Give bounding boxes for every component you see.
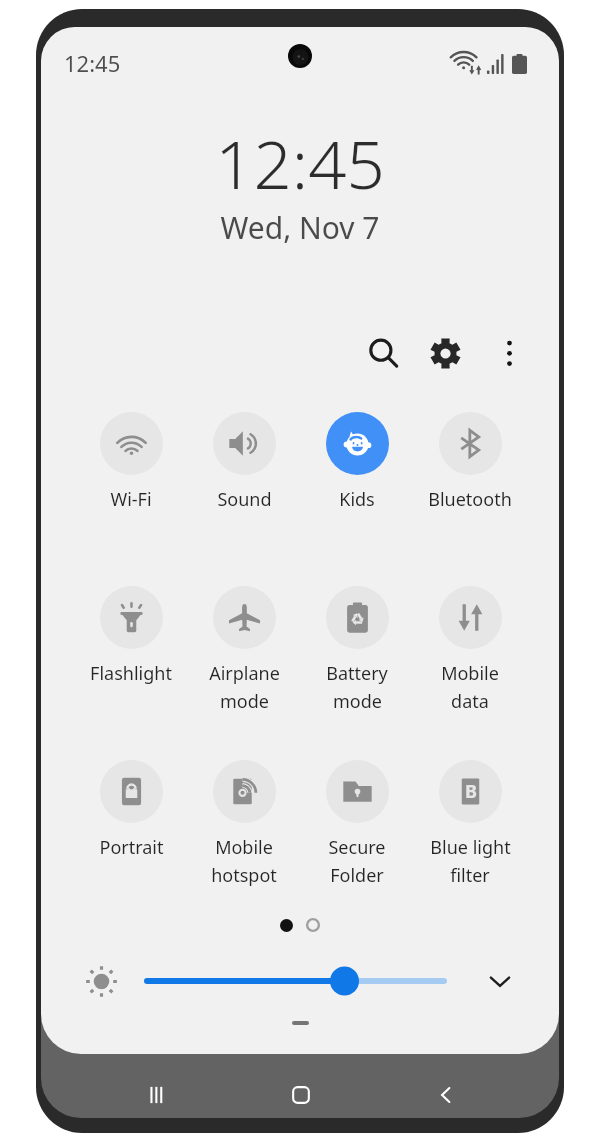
staticText: data [451, 689, 489, 714]
staticText: Bluetooth [428, 487, 512, 512]
button[interactable] [280, 919, 293, 932]
button[interactable] [137, 961, 454, 1001]
staticText: mode [333, 689, 382, 714]
staticText: Wi-Fi [110, 487, 152, 512]
staticText: Kids [339, 487, 375, 512]
staticText: Wed, Nov 7 [41, 207, 559, 248]
button[interactable]: Expand quick settings [478, 959, 522, 1003]
button[interactable]: Back [418, 1067, 474, 1118]
staticText: hotspot [211, 863, 277, 888]
button[interactable]: Bluetooth [414, 412, 526, 512]
staticText: 12:45 [64, 48, 121, 78]
staticText: Mobile [215, 835, 273, 860]
button[interactable]: More options [485, 329, 533, 377]
staticText: filter [450, 863, 490, 888]
button[interactable]: Brightness [81, 961, 121, 1001]
button[interactable]: Airplane [188, 586, 300, 711]
staticText: Secure [328, 835, 386, 860]
staticText: Mobile [441, 661, 499, 686]
staticText: Airplane [209, 661, 280, 686]
button[interactable]: Battery [301, 586, 413, 711]
button[interactable]: Sound [188, 412, 300, 512]
staticText: Portrait [99, 835, 164, 860]
button[interactable]: Kids [301, 412, 413, 512]
staticText: Blue light [430, 835, 511, 860]
staticText: Battery [326, 661, 388, 686]
button[interactable]: Mobile [414, 586, 526, 711]
button[interactable]: Search [359, 329, 407, 377]
staticText: 12:45 [41, 117, 559, 208]
button[interactable]: Secure [301, 760, 413, 885]
button[interactable]: Portrait [75, 760, 187, 860]
staticText: Folder [330, 863, 384, 888]
button[interactable]: Flashlight [75, 586, 187, 686]
button[interactable] [306, 918, 320, 932]
button[interactable]: Recent apps [128, 1067, 184, 1118]
staticText: Flashlight [90, 661, 172, 686]
button[interactable]: B [414, 760, 526, 885]
button[interactable]: Home [273, 1067, 329, 1118]
button[interactable]: Mobile [188, 760, 300, 885]
staticText: mode [220, 689, 269, 714]
button[interactable]: Settings [421, 329, 469, 377]
staticText: Sound [217, 487, 272, 512]
button[interactable]: Wi-Fi [75, 412, 187, 512]
button[interactable]: Collapse panel [292, 1021, 309, 1025]
staticText: B [465, 779, 477, 804]
